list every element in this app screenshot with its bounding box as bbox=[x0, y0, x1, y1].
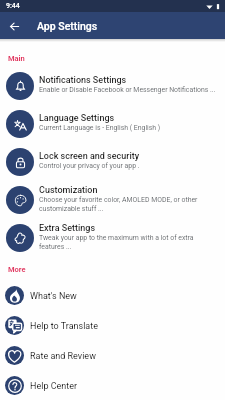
staticText: Tweak your app to the maximum with a lot… bbox=[39, 234, 223, 250]
staticText: Rate and Review bbox=[30, 351, 96, 362]
button[interactable]: Rate and Review bbox=[0, 340, 225, 370]
staticText: Customization bbox=[39, 185, 98, 196]
button[interactable]: What's New bbox=[0, 280, 225, 310]
staticText: Help Center bbox=[30, 381, 78, 392]
staticText: Current Language is - English ( English … bbox=[39, 124, 161, 132]
button[interactable]: Language Settings bbox=[0, 105, 225, 143]
staticText: 9:44 bbox=[6, 2, 20, 10]
staticText: Enable or Disable Facebook or Messenger … bbox=[39, 86, 216, 94]
button[interactable]: Help Center bbox=[0, 370, 225, 400]
button[interactable]: Customization bbox=[0, 181, 225, 219]
staticText: Lock screen and security bbox=[39, 151, 140, 162]
staticText: Main bbox=[8, 54, 25, 63]
button[interactable]: Notifications Settings bbox=[0, 67, 225, 105]
staticText: What's New bbox=[30, 291, 77, 302]
staticText: Help to Translate bbox=[30, 321, 98, 332]
button[interactable]: Back bbox=[4, 16, 24, 36]
staticText: Language Settings bbox=[39, 113, 115, 124]
staticText: Choose your favorite color, AMOLED MODE,… bbox=[39, 196, 223, 212]
staticText: Extra Settings bbox=[39, 223, 96, 234]
button[interactable]: Extra Settings bbox=[0, 219, 225, 257]
staticText: Notifications Settings bbox=[39, 75, 127, 86]
staticText: More bbox=[8, 265, 26, 274]
staticText: App Settings bbox=[37, 20, 98, 32]
button[interactable]: Lock screen and security bbox=[0, 143, 225, 181]
staticText: Control your privacy of your app . bbox=[39, 162, 140, 170]
button[interactable]: Help to Translate bbox=[0, 310, 225, 340]
